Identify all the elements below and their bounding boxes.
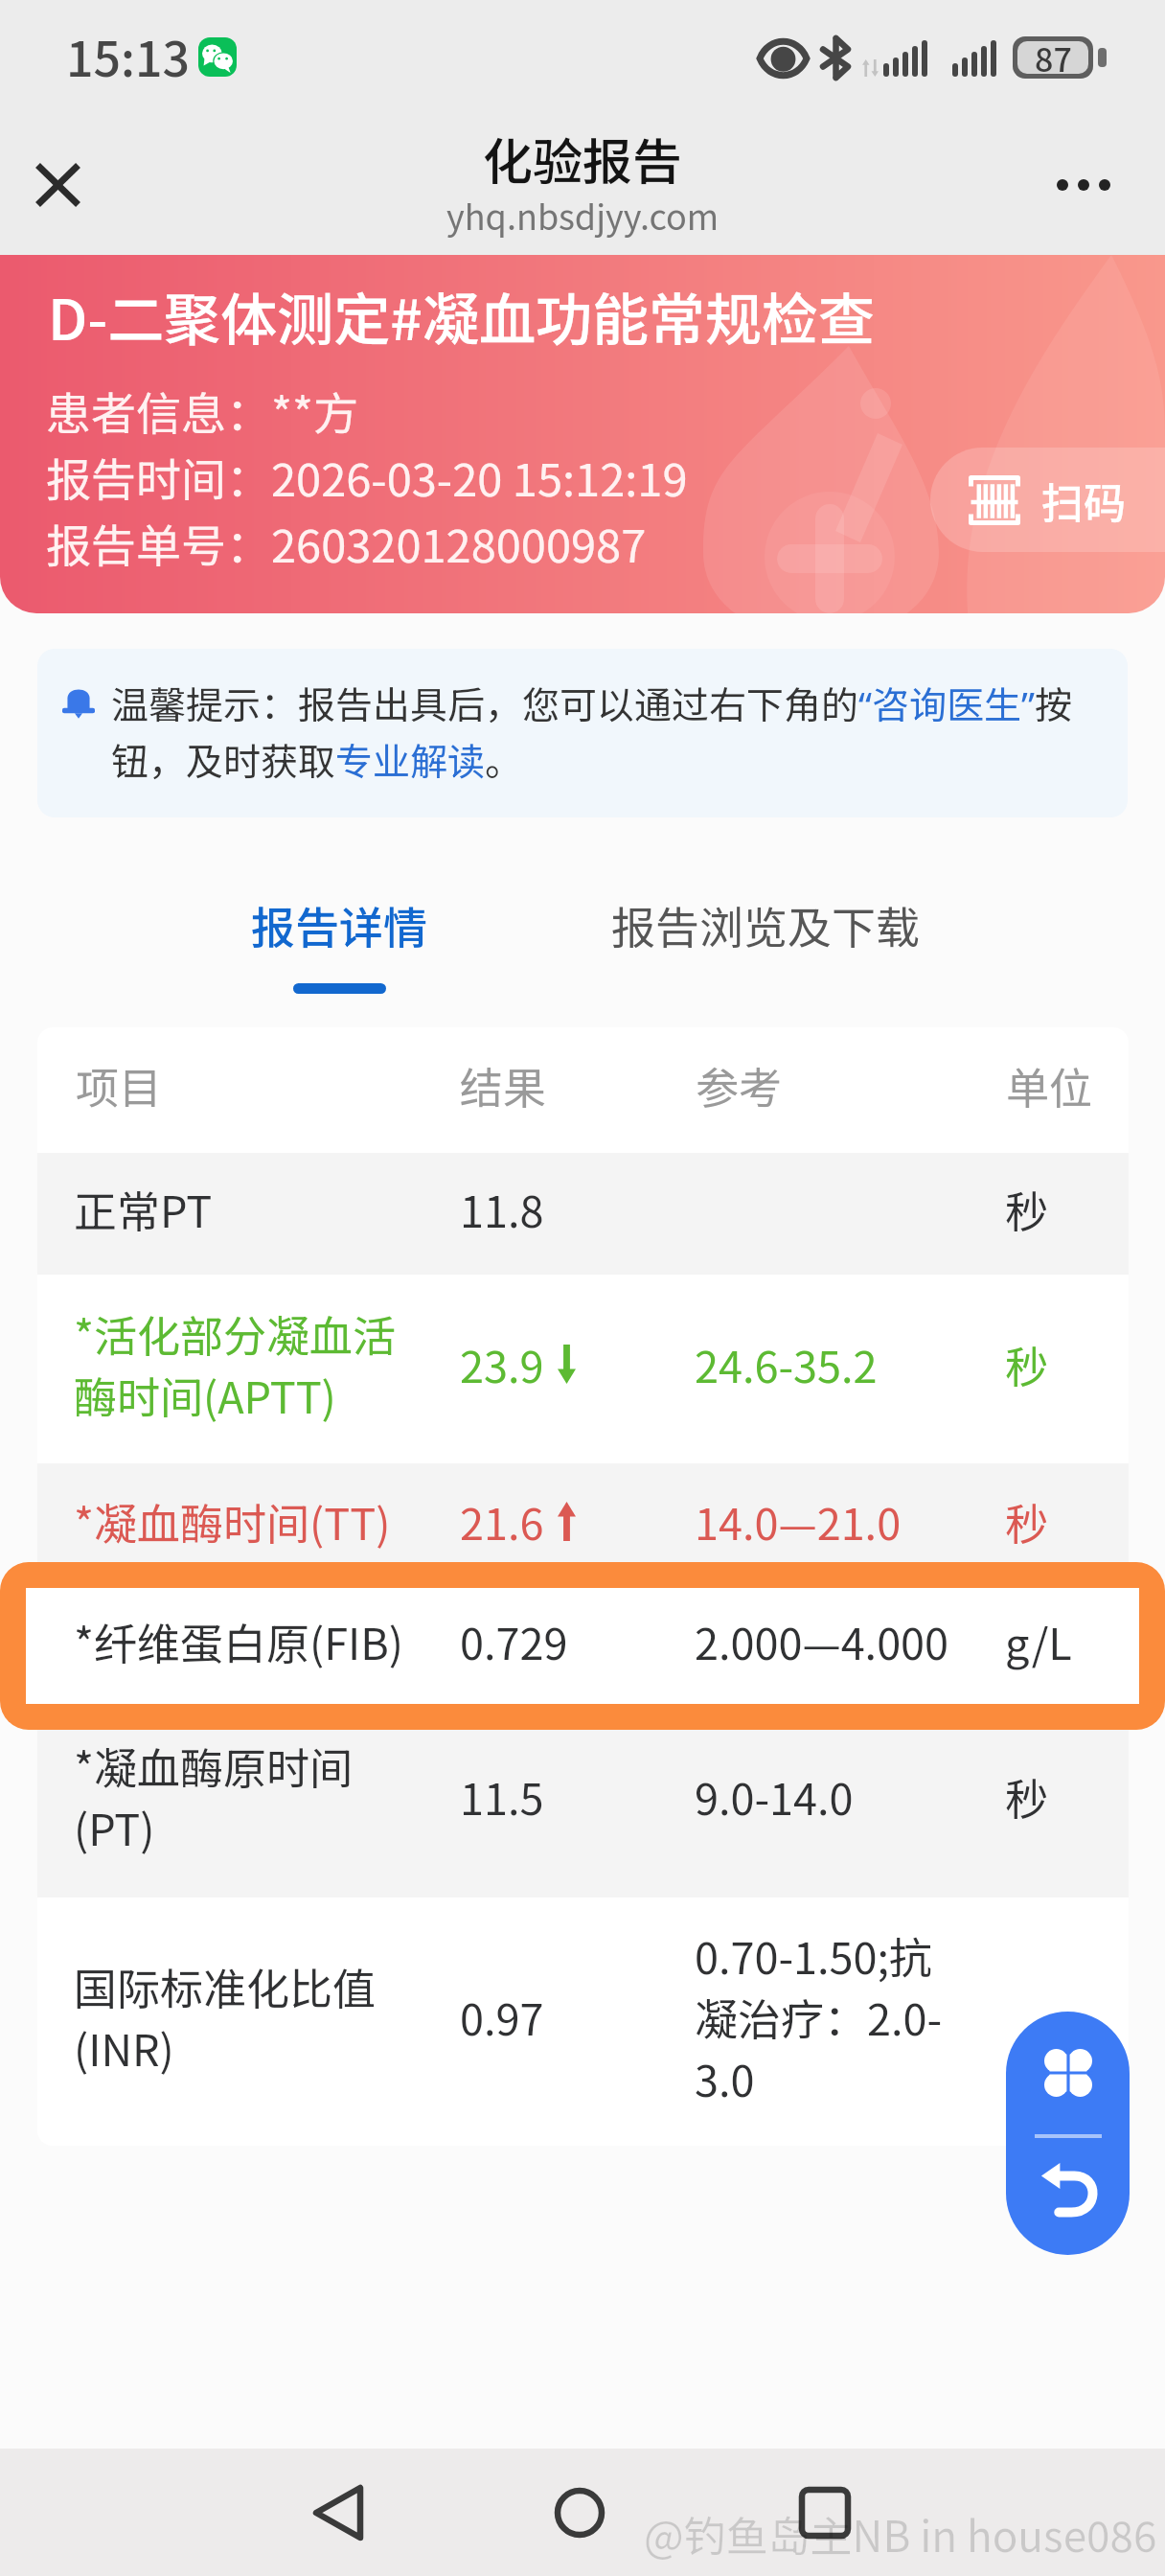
- staticText: 报告单号：260320128000987: [46, 510, 647, 575]
- staticText: 秒: [1005, 1490, 1049, 1552]
- button[interactable]: *凝血酶原时间 (PT): [37, 1704, 1129, 1897]
- button[interactable]: 正常PT: [37, 1153, 1129, 1275]
- button[interactable]: Mini program menu: [1006, 2012, 1130, 2134]
- button[interactable]: Home: [517, 2449, 642, 2576]
- button[interactable]: Close: [15, 143, 100, 227]
- staticText: 2.000—4.000: [695, 1610, 949, 1672]
- staticText: 正常PT: [74, 1178, 213, 1240]
- button[interactable]: 温馨提示：报告出具后，您可以通过右下角的“咨询医生”按钮，及时获取专业解读。: [37, 649, 1128, 817]
- staticText: D-二聚体测定#凝血功能常规检查: [48, 275, 875, 356]
- button[interactable]: 扫码: [930, 448, 1165, 552]
- button[interactable]: 报告详情: [251, 893, 427, 994]
- staticText: 报告浏览及下载: [611, 893, 920, 957]
- staticText: 温馨提示：报告出具后，您可以通过右下角的“咨询医生”按钮，及时获取专业解读。: [111, 676, 1108, 787]
- staticText: *纤维蛋白原(FIB): [74, 1610, 404, 1672]
- staticText: 国际标准化比值 (INR): [74, 1955, 377, 2079]
- button[interactable]: Recent apps: [763, 2449, 887, 2576]
- staticText: @钓鱼岛主NB in house086: [644, 2503, 1157, 2564]
- staticText: *活化部分凝血活 酶时间(APTT): [74, 1302, 397, 1426]
- staticText: 15:13: [66, 21, 190, 90]
- staticText: 单位: [1006, 1054, 1093, 1116]
- staticText: 秒: [1005, 1333, 1049, 1395]
- staticText: 化验报告: [483, 123, 683, 195]
- staticText: 14.0—21.0: [695, 1490, 902, 1552]
- staticText: 报告详情: [251, 893, 427, 957]
- staticText: 报告时间：2026-03-20 15:12:19: [46, 444, 688, 509]
- staticText: 0.729: [460, 1610, 568, 1672]
- staticText: 21.6: [460, 1490, 544, 1552]
- staticText: 11.8: [460, 1178, 544, 1240]
- button[interactable]: Back: [1006, 2138, 1130, 2255]
- staticText: yhq.nbsdjyy.com: [446, 190, 720, 240]
- staticText: 扫码: [1041, 470, 1126, 531]
- button[interactable]: *凝血酶时间(TT): [37, 1463, 1129, 1588]
- staticText: 秒: [1005, 1178, 1049, 1240]
- staticText: *凝血酶原时间 (PT): [74, 1735, 354, 1858]
- button[interactable]: *活化部分凝血活 酶时间(APTT): [37, 1275, 1129, 1463]
- staticText: 87: [1035, 34, 1072, 81]
- staticText: 参考: [696, 1054, 783, 1116]
- staticText: 0.70-1.50;抗 凝治疗：2.0- 3.0: [695, 1924, 943, 2109]
- staticText: 11.5: [460, 1765, 544, 1828]
- staticText: 秒: [1005, 1765, 1049, 1828]
- button[interactable]: More options: [1031, 156, 1136, 214]
- staticText: 24.6-35.2: [695, 1333, 878, 1395]
- button[interactable]: *纤维蛋白原(FIB): [26, 1588, 1139, 1704]
- staticText: 0.97: [460, 1986, 544, 2048]
- button[interactable]: [37, 1588, 1129, 1704]
- staticText: 项目: [76, 1054, 163, 1116]
- button[interactable]: Back: [275, 2449, 400, 2576]
- staticText: 结果: [460, 1054, 547, 1116]
- staticText: *凝血酶时间(TT): [74, 1490, 391, 1552]
- staticText: g/L: [1005, 1610, 1072, 1672]
- button[interactable]: 报告浏览及下载: [611, 893, 920, 957]
- button[interactable]: 国际标准化比值 (INR): [37, 1897, 1129, 2146]
- staticText: 23.9: [460, 1333, 544, 1395]
- staticText: 患者信息：**方: [46, 378, 358, 443]
- staticText: 9.0-14.0: [695, 1765, 854, 1828]
